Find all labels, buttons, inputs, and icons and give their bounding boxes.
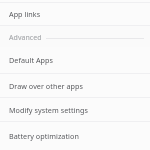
button[interactable]: App links	[0, 3, 150, 26]
staticText: App links	[9, 9, 41, 19]
button[interactable]: Modify system settings	[0, 98, 150, 122]
button[interactable]: Battery optimization	[0, 122, 150, 150]
staticText: Battery optimization	[9, 131, 79, 141]
button[interactable]: Default Apps	[0, 47, 150, 74]
staticText: Advanced	[9, 33, 42, 43]
staticText: Modify system settings	[9, 105, 88, 115]
staticText: Draw over other apps	[9, 81, 83, 91]
button[interactable]: Draw over other apps	[0, 74, 150, 98]
staticText: Default Apps	[9, 55, 54, 65]
